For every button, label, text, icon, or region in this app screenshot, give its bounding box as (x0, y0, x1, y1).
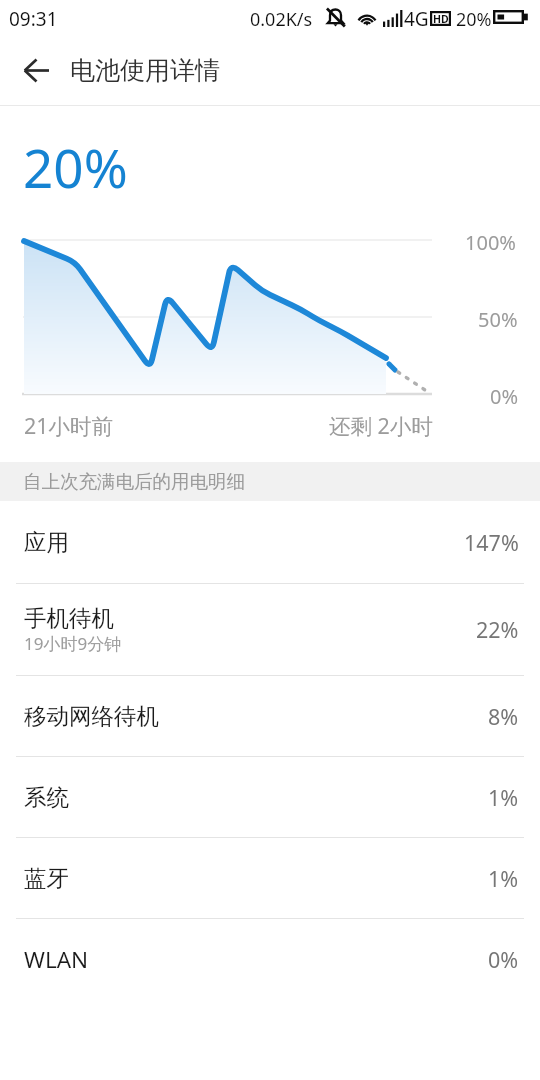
button[interactable]: 系统 (0, 757, 540, 837)
staticText: 50% (478, 306, 518, 333)
staticText: 应用 (24, 528, 69, 556)
staticText: 0.02K/s (250, 7, 313, 32)
staticText: 手机待机 (24, 604, 114, 632)
staticText: 21小时前 (24, 411, 114, 440)
button[interactable]: Back (8, 45, 64, 95)
staticText: 20% (23, 131, 128, 203)
staticText: 100% (465, 229, 516, 256)
staticText: WLAN (24, 944, 89, 975)
staticText: 20% (456, 7, 492, 32)
staticText: 1% (488, 783, 519, 812)
button[interactable]: 蓝牙 (0, 838, 540, 918)
staticText: 0% (490, 383, 519, 410)
staticText: 系统 (24, 783, 69, 811)
staticText: 还剩 2小时 (329, 411, 433, 440)
button[interactable]: WLAN (0, 919, 540, 999)
button[interactable]: 应用 (0, 501, 540, 583)
staticText: 1% (488, 864, 519, 893)
staticText: 移动网络待机 (24, 702, 159, 730)
staticText: 自上次充满电后的用电明细 (23, 470, 245, 493)
staticText: 22% (476, 615, 519, 644)
staticText: 19小时9分钟 (24, 632, 122, 655)
staticText: 电池使用详情 (70, 55, 220, 86)
staticText: HD (433, 12, 449, 26)
staticText: 8% (488, 702, 519, 731)
staticText: 蓝牙 (24, 864, 69, 892)
staticText: 0% (488, 945, 519, 974)
button[interactable]: 手机待机 (0, 584, 540, 675)
staticText: 09:31 (9, 6, 58, 32)
staticText: 147% (464, 528, 519, 557)
staticText: 4G (404, 6, 429, 32)
button[interactable]: 移动网络待机 (0, 676, 540, 756)
